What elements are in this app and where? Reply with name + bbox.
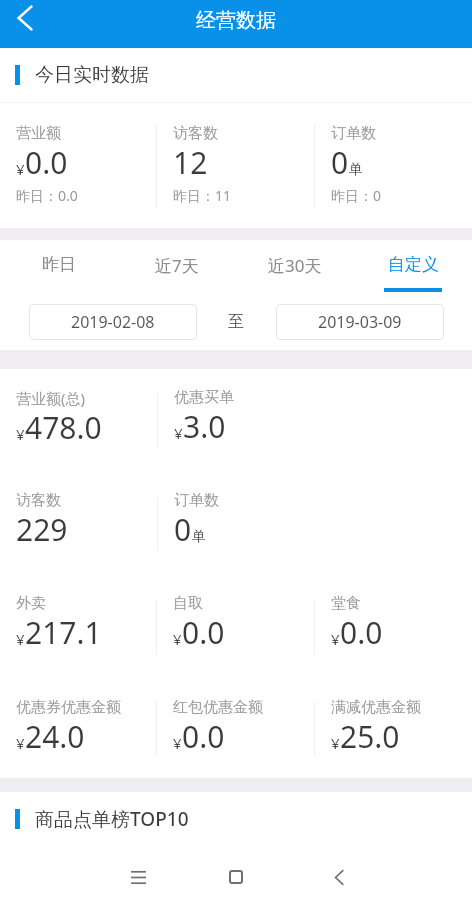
staticText: 229 (16, 509, 68, 550)
staticText: 单 (192, 528, 206, 546)
staticText: 0 (174, 509, 192, 550)
staticText: 3.0 (183, 406, 226, 447)
staticText: 0.0 (340, 612, 383, 653)
staticText: 0.0 (182, 716, 225, 757)
button[interactable]: 昨日 (0, 240, 118, 294)
button[interactable]: 自定义 (354, 240, 472, 294)
staticText: ¥ (16, 629, 25, 649)
button[interactable]: Recent apps (114, 853, 162, 899)
staticText: 217.1 (25, 612, 102, 653)
staticText: 0.0 (25, 142, 68, 183)
staticText: ¥ (173, 733, 182, 753)
staticText: 昨日：0 (331, 186, 382, 205)
staticText: 单 (349, 161, 363, 179)
button[interactable]: 近7天 (118, 240, 236, 294)
staticText: 自定义 (388, 254, 439, 275)
staticText: 访客数 (173, 124, 218, 143)
staticText: 478.0 (25, 407, 102, 448)
button[interactable]: 近30天 (236, 240, 354, 294)
staticText: 订单数 (174, 491, 219, 510)
staticText: 近30天 (268, 254, 322, 277)
staticText: 近7天 (155, 254, 199, 277)
staticText: ¥ (173, 629, 182, 649)
staticText: 营业额 (16, 124, 61, 143)
staticText: 堂食 (331, 594, 361, 613)
staticText: 昨日：0.0 (16, 186, 78, 205)
button[interactable]: 商品点单榜TOP10 (0, 792, 472, 845)
staticText: 外卖 (16, 594, 46, 613)
staticText: 自取 (173, 594, 203, 613)
button[interactable]: 2019-02-08 (29, 304, 197, 340)
staticText: 2019-02-08 (71, 311, 155, 333)
staticText: 优惠买单 (174, 388, 234, 407)
staticText: 昨日：11 (173, 186, 232, 205)
button[interactable]: Back (0, 0, 48, 48)
staticText: 0.0 (182, 612, 225, 653)
staticText: 订单数 (331, 124, 376, 143)
staticText: ¥ (16, 159, 25, 179)
staticText: 24.0 (25, 716, 85, 757)
staticText: 商品点单榜TOP10 (35, 806, 189, 832)
staticText: 访客数 (16, 491, 61, 510)
staticText: 经营数据 (196, 8, 276, 33)
staticText: 2019-03-09 (318, 311, 402, 333)
staticText: ¥ (16, 733, 25, 753)
staticText: ¥ (174, 423, 183, 443)
staticText: 0 (331, 142, 349, 183)
staticText: 今日实时数据 (35, 63, 149, 87)
staticText: 昨日 (42, 254, 76, 275)
staticText: 优惠券优惠金额 (16, 698, 121, 717)
staticText: ¥ (16, 424, 25, 444)
staticText: ¥ (331, 629, 340, 649)
button[interactable]: 2019-03-09 (276, 304, 444, 340)
staticText: 满减优惠金额 (331, 698, 421, 717)
staticText: 25.0 (340, 716, 400, 757)
staticText: 红包优惠金额 (173, 698, 263, 717)
button[interactable]: 今日实时数据 (0, 48, 472, 102)
staticText: ¥ (331, 733, 340, 753)
button[interactable]: Home (212, 853, 260, 899)
staticText: 至 (228, 312, 244, 332)
staticText: 12 (173, 142, 208, 183)
button[interactable]: Back (315, 853, 363, 899)
staticText: 营业额(总) (16, 388, 86, 408)
